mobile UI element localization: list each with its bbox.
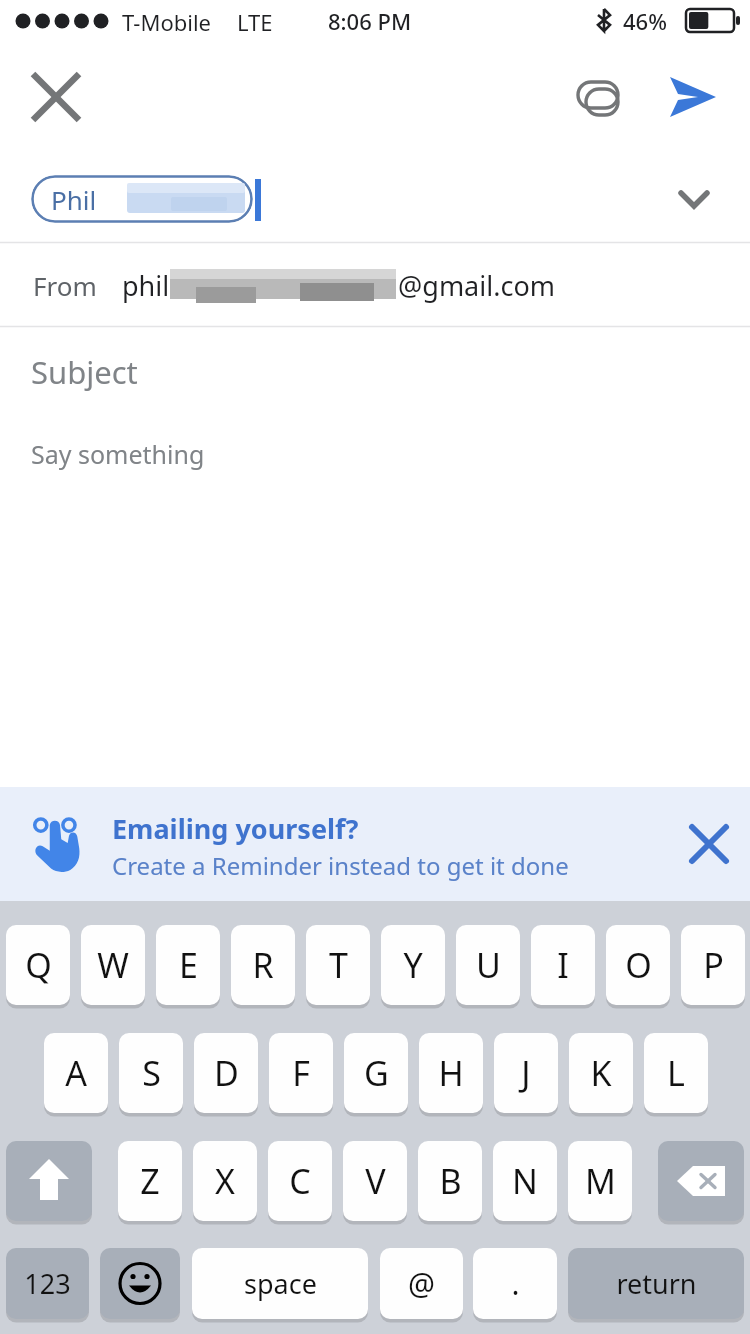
button[interactable]: Emoji keyboard — [100, 1248, 180, 1319]
staticText: @ — [408, 1263, 435, 1304]
button[interactable]: Y — [381, 925, 445, 1005]
staticText: I — [557, 942, 569, 988]
staticText: phil — [122, 267, 170, 304]
button[interactable]: B — [418, 1141, 482, 1221]
staticText: O — [625, 942, 652, 988]
staticText: 123 — [24, 1265, 71, 1302]
staticText: A — [65, 1050, 87, 1096]
button[interactable]: Q — [6, 925, 70, 1005]
staticText: space — [244, 1265, 317, 1302]
staticText: Emailing yourself? — [112, 810, 359, 847]
button[interactable]: N — [493, 1141, 557, 1221]
button[interactable]: G — [344, 1033, 408, 1113]
staticText: G — [364, 1050, 389, 1096]
button[interactable]: Attach file — [562, 61, 634, 133]
button[interactable]: Send — [656, 61, 728, 133]
staticText: V — [365, 1158, 386, 1204]
button[interactable]: D — [194, 1033, 258, 1113]
button[interactable]: K — [569, 1033, 633, 1113]
staticText: K — [590, 1050, 612, 1096]
button[interactable]: space — [192, 1248, 368, 1319]
button[interactable]: Expand recipients — [658, 176, 730, 222]
staticText: S — [142, 1050, 161, 1096]
staticText: X — [215, 1158, 235, 1204]
button[interactable]: H — [419, 1033, 483, 1113]
staticText: B — [439, 1158, 462, 1204]
button[interactable]: 123 — [6, 1248, 89, 1319]
staticText: LTE — [237, 7, 273, 37]
button[interactable]: A — [44, 1033, 108, 1113]
staticText: N — [512, 1158, 538, 1204]
staticText: L — [667, 1050, 685, 1096]
button[interactable]: E — [156, 925, 220, 1005]
staticText: E — [179, 942, 198, 988]
button[interactable]: From — [0, 243, 750, 327]
staticText: D — [214, 1050, 239, 1096]
button[interactable]: Backspace — [658, 1141, 744, 1221]
button[interactable]: Subject — [0, 327, 750, 417]
staticText: Q — [25, 942, 52, 988]
staticText: @gmail.com — [398, 267, 555, 304]
button[interactable]: X — [193, 1141, 257, 1221]
button[interactable]: W — [81, 925, 145, 1005]
button[interactable]: T — [306, 925, 370, 1005]
button[interactable]: Z — [118, 1141, 182, 1221]
staticText: W — [97, 942, 129, 988]
staticText: F — [292, 1050, 310, 1096]
button[interactable]: Dismiss — [674, 809, 744, 879]
staticText: Phil — [51, 182, 97, 217]
staticText: 46% — [623, 6, 667, 36]
button[interactable]: Close — [20, 61, 92, 133]
staticText: C — [289, 1158, 311, 1204]
staticText: T — [329, 942, 348, 988]
button[interactable]: Emailing yourself? — [0, 787, 750, 901]
button[interactable]: Phil — [31, 175, 253, 223]
staticText: J — [521, 1050, 531, 1096]
button[interactable]: Shift — [6, 1141, 92, 1221]
button[interactable]: U — [456, 925, 520, 1005]
staticText: H — [438, 1050, 464, 1096]
button[interactable]: S — [119, 1033, 183, 1113]
button[interactable]: R — [231, 925, 295, 1005]
button[interactable]: . — [473, 1248, 557, 1319]
staticText: M — [585, 1158, 616, 1204]
button[interactable]: L — [644, 1033, 708, 1113]
staticText: Say something — [31, 437, 205, 471]
button[interactable]: return — [568, 1248, 744, 1319]
button[interactable]: V — [343, 1141, 407, 1221]
staticText: T-Mobile — [122, 7, 211, 37]
button[interactable]: C — [268, 1141, 332, 1221]
button[interactable]: P — [681, 925, 745, 1005]
button[interactable]: @ — [380, 1248, 463, 1319]
staticText: . — [511, 1263, 520, 1304]
button[interactable]: F — [269, 1033, 333, 1113]
button[interactable]: O — [606, 925, 670, 1005]
staticText: 8:06 PM — [328, 6, 412, 36]
button[interactable]: I — [531, 925, 595, 1005]
button[interactable]: J — [494, 1033, 558, 1113]
staticText: Y — [403, 942, 423, 988]
staticText: Create a Reminder instead to get it done — [112, 849, 569, 882]
staticText: R — [252, 942, 274, 988]
staticText: Subject — [31, 351, 138, 393]
staticText: P — [703, 942, 724, 988]
staticText: From — [33, 268, 97, 303]
staticText: U — [476, 942, 501, 988]
button[interactable]: M — [568, 1141, 632, 1221]
button[interactable]: Say something — [0, 417, 750, 787]
staticText: return — [616, 1265, 697, 1302]
staticText: Z — [140, 1158, 160, 1204]
